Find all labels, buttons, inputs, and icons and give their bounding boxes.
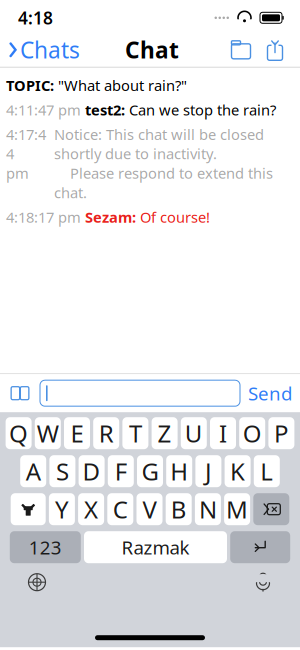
staticText: "What about rain?": [58, 75, 187, 95]
staticText: X: [84, 493, 98, 525]
staticText: T: [129, 417, 142, 449]
staticText: 4:17:44 pm: [6, 124, 46, 183]
button[interactable]: Y: [49, 493, 75, 525]
button[interactable]: G: [137, 455, 163, 487]
staticText: Z: [158, 417, 172, 449]
staticText: Razmak: [121, 535, 189, 560]
staticText: V: [142, 493, 156, 525]
staticText: C: [113, 493, 128, 525]
staticText: 4:11:47 pm: [6, 100, 81, 119]
staticText: U: [185, 417, 203, 449]
staticText: R: [99, 417, 114, 449]
button[interactable]: Delete: [253, 493, 289, 525]
staticText: Of course!: [140, 207, 210, 227]
staticText: 123: [29, 535, 62, 560]
button[interactable]: Next keyboard: [22, 568, 52, 596]
button[interactable]: O: [239, 417, 265, 449]
staticText: I: [219, 417, 227, 449]
button[interactable]: Dictate: [248, 568, 278, 596]
button[interactable]: Razmak: [84, 531, 227, 563]
button[interactable]: Return: [230, 531, 290, 563]
button[interactable]: R: [93, 417, 119, 449]
staticText: 4:18: [18, 6, 53, 29]
button[interactable]: Shift: [11, 493, 46, 525]
button[interactable]: Send: [248, 377, 292, 410]
staticText: H: [170, 455, 188, 487]
button[interactable]: X: [78, 493, 104, 525]
staticText: A: [26, 455, 41, 487]
button[interactable]: U: [181, 417, 207, 449]
button[interactable]: C: [107, 493, 133, 525]
staticText: G: [141, 455, 158, 487]
button[interactable]: T: [122, 417, 148, 449]
staticText: L: [260, 455, 273, 487]
staticText: D: [83, 455, 101, 487]
button[interactable]: H: [166, 455, 192, 487]
button[interactable]: B: [166, 493, 192, 525]
staticText: Send: [248, 381, 292, 406]
button[interactable]: E: [64, 417, 90, 449]
staticText: O: [243, 417, 262, 449]
staticText: M: [226, 493, 248, 525]
staticText: TOPIC:: [6, 75, 54, 95]
staticText: Chats: [20, 35, 80, 65]
button[interactable]: D: [79, 455, 105, 487]
button[interactable]: J: [195, 455, 221, 487]
button[interactable]: V: [136, 493, 162, 525]
staticText: W: [37, 417, 59, 449]
staticText: N: [199, 493, 217, 525]
button[interactable]: Z: [152, 417, 178, 449]
button[interactable]: Phrases: [8, 380, 32, 406]
button[interactable]: F: [108, 455, 134, 487]
button[interactable]: W: [35, 417, 61, 449]
button[interactable]: A: [20, 455, 46, 487]
staticText: Notice: This chat will be closed shortly…: [54, 124, 273, 202]
button[interactable]: L: [254, 455, 280, 487]
button[interactable]: I: [210, 417, 236, 449]
staticText: B: [171, 493, 187, 525]
button[interactable]: Share: [258, 35, 292, 65]
staticText: J: [205, 455, 212, 487]
button[interactable]: N: [195, 493, 221, 525]
staticText: Q: [9, 417, 28, 449]
staticText: E: [70, 417, 83, 449]
button[interactable]: M: [224, 493, 250, 525]
button[interactable]: Q: [6, 417, 32, 449]
staticText: K: [230, 455, 245, 487]
staticText: P: [274, 417, 289, 449]
staticText: test2:: [85, 100, 125, 119]
button[interactable]: Folders: [224, 35, 258, 65]
staticText: Can we stop the rain?: [129, 100, 276, 119]
staticText: F: [115, 455, 127, 487]
button[interactable]: P: [268, 417, 294, 449]
staticText: Chat: [125, 35, 179, 65]
staticText: S: [56, 455, 69, 487]
button[interactable]: 123: [10, 531, 81, 563]
button[interactable]: S: [49, 455, 75, 487]
staticText: 4:18:17 pm: [6, 207, 81, 227]
button[interactable]: Chats: [0, 29, 80, 71]
button[interactable]: K: [225, 455, 251, 487]
staticText: Sezam:: [85, 207, 136, 227]
staticText: Y: [55, 493, 69, 525]
